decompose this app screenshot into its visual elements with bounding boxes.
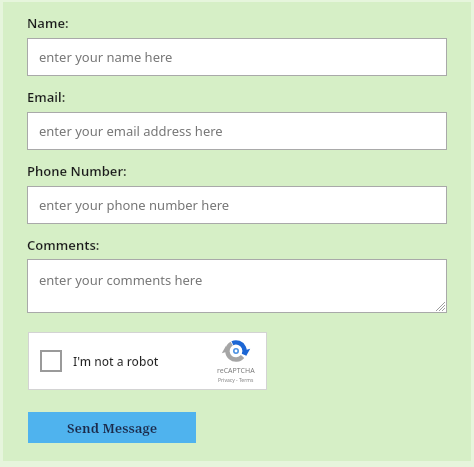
staticText: Email: [27,88,66,106]
staticText: Name: [27,14,69,32]
staticText: Send Message [67,419,158,437]
staticText: enter your name here [39,48,173,66]
staticText: enter your phone number here [39,196,230,214]
other: reCAPTCHA logo [223,338,249,364]
button[interactable]: enter your phone number here [27,186,447,224]
staticText: Comments: [27,236,100,254]
button[interactable]: I'm not a robot checkbox [28,332,267,390]
staticText: Privacy - Terms [218,377,254,384]
button[interactable]: enter your comments here [27,259,447,313]
staticText: enter your comments here [39,271,203,289]
button[interactable]: Send Message [28,412,196,443]
button[interactable]: enter your name here [27,38,447,76]
button[interactable]: enter your email address here [27,112,447,150]
staticText: reCAPTCHA [217,366,255,376]
staticText: enter your email address here [39,122,223,140]
staticText: I'm not a robot [73,353,159,369]
button[interactable]: I'm not a robot checkbox [40,350,62,372]
staticText: Phone Number: [27,162,127,180]
